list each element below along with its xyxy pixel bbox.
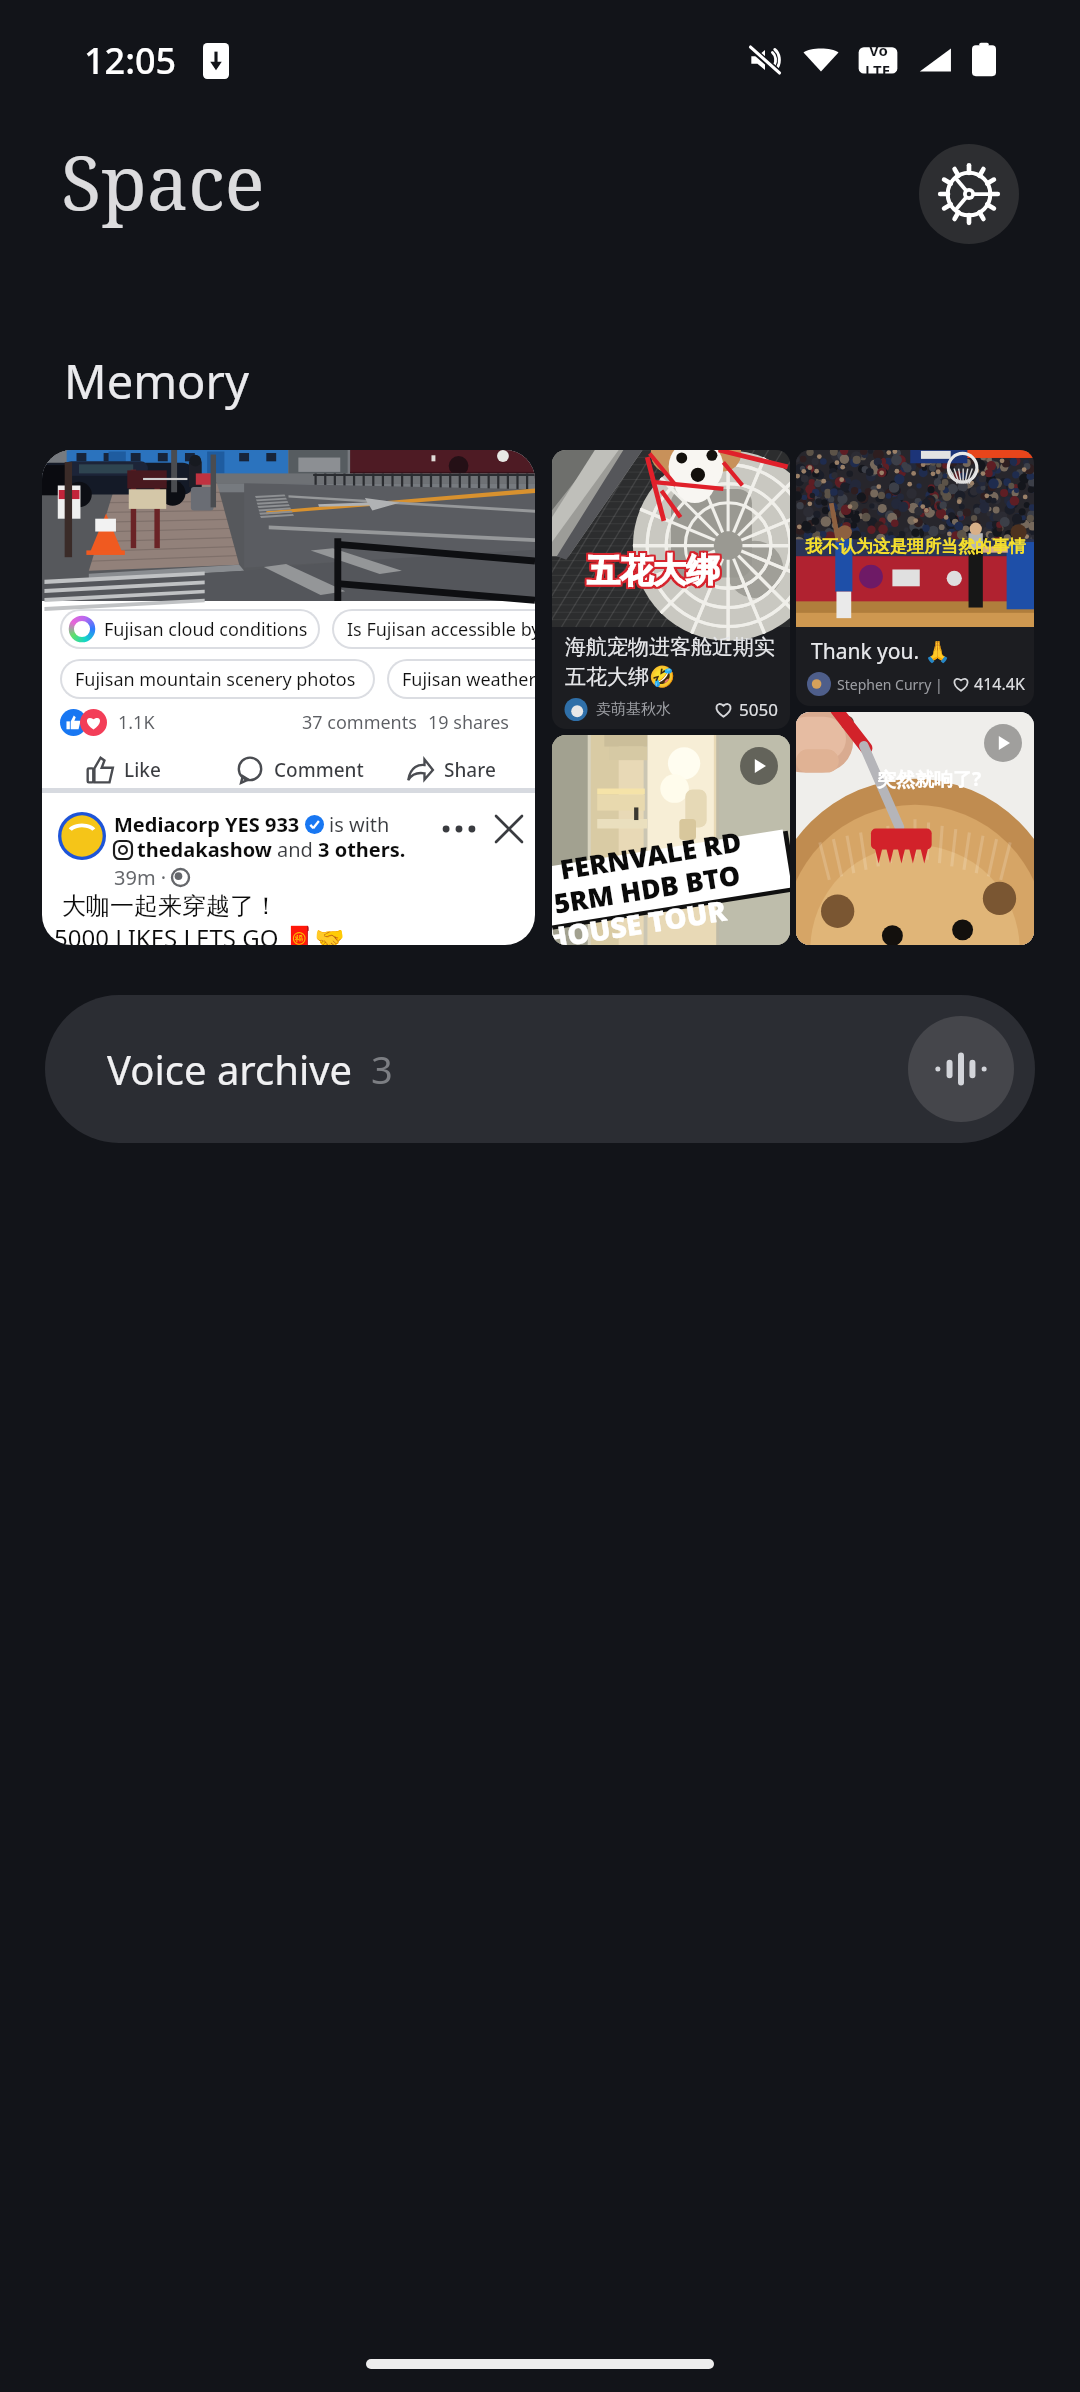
staticText: 五花大绑: [587, 548, 719, 590]
staticText: Comment: [274, 757, 364, 783]
staticText: and: [277, 836, 313, 863]
staticText: 我不认为这是理所当然的事情: [805, 536, 1026, 557]
staticText: 五花大绑: [587, 551, 719, 593]
button[interactable]: 五花大绑: [552, 450, 790, 729]
staticText: 12:05: [84, 36, 177, 85]
staticText: 五花大绑: [585, 549, 717, 591]
staticText: Fujisan cloud conditions: [104, 617, 308, 642]
button[interactable]: Play: [984, 724, 1022, 762]
staticText: 37 comments: [302, 710, 417, 735]
staticText: Mediacorp YES 933: [114, 811, 300, 838]
staticText: 海航宠物进客舱近期实录，: [565, 634, 777, 660]
button[interactable]: Settings: [919, 144, 1019, 244]
staticText: Fujisan weather fo: [402, 667, 535, 692]
button[interactable]: Like: [82, 752, 165, 788]
staticText: 5050: [739, 698, 778, 721]
staticText: 五花大绑: [589, 548, 721, 590]
staticText: 五花大绑: [586, 548, 718, 590]
staticText: 五花大绑: [586, 549, 718, 591]
button[interactable]: Comment: [232, 752, 368, 788]
button[interactable]: Voice archive: [45, 995, 1035, 1143]
staticText: 五花大绑: [589, 551, 721, 593]
button[interactable]: Fujisan weather fo: [389, 661, 535, 697]
staticText: 五花大绑🤣: [565, 664, 676, 690]
staticText: 大咖一起来穿越了！: [62, 891, 278, 921]
staticText: 414.4K: [974, 673, 1025, 695]
staticText: Voice archive: [107, 1042, 353, 1096]
staticText: 5000 LIKES LETS GO 🧧🤝: [54, 921, 345, 945]
staticText: 五花大绑: [585, 550, 717, 592]
staticText: 五花大绑: [587, 552, 719, 594]
staticText: LTE: [865, 60, 891, 80]
staticText: 五花大绑: [588, 549, 720, 591]
staticText: Fujisan mountain scenery photos: [75, 667, 356, 692]
staticText: 3: [371, 1043, 393, 1095]
staticText: Share: [444, 757, 496, 783]
staticText: 卖萌基秋水: [596, 700, 671, 719]
staticText: FERNVALE RD: [557, 822, 745, 888]
button[interactable]: More options: [442, 820, 476, 838]
button[interactable]: Is Fujisan accessible by: [334, 611, 535, 647]
staticText: 五花大绑: [586, 552, 718, 594]
staticText: 五花大绑: [586, 550, 718, 592]
button[interactable]: Voice recorder: [908, 1016, 1014, 1122]
staticText: 五花大绑: [587, 550, 719, 592]
staticText: Is Fujisan accessible by: [347, 617, 535, 642]
button[interactable]: Play: [796, 712, 1034, 945]
staticText: Space: [61, 131, 265, 232]
staticText: Thank you. 🙏: [811, 637, 951, 666]
staticText: 五花大绑: [589, 549, 721, 591]
staticText: 突然就响了?: [877, 766, 982, 792]
staticText: HOUSE TOUR: [552, 891, 730, 945]
staticText: 五花大绑: [588, 552, 720, 594]
staticText: Like: [124, 757, 161, 783]
staticText: 五花大绑: [588, 551, 720, 593]
staticText: is with: [329, 811, 390, 838]
staticText: 3 others.: [318, 836, 406, 863]
staticText: thedakashow: [137, 836, 272, 863]
staticText: 19 shares: [428, 710, 509, 735]
staticText: Vo: [869, 40, 888, 60]
button[interactable]: Share: [402, 752, 500, 788]
button[interactable]: 我不认为这是理所当然的事情: [796, 450, 1034, 706]
staticText: 五花大绑: [589, 552, 721, 594]
button[interactable]: Play: [740, 747, 778, 785]
staticText: Stephen Curry | 史…: [837, 675, 946, 694]
staticText: 1.1K: [118, 710, 155, 735]
button[interactable]: Fujisan mountain scenery photos: [62, 661, 373, 697]
button[interactable]: Close: [496, 816, 522, 842]
staticText: 5RM HDB BTO: [552, 856, 744, 922]
staticText: 五花大绑: [588, 548, 720, 590]
button[interactable]: Play: [552, 735, 790, 945]
staticText: 五花大绑: [587, 549, 719, 591]
staticText: 五花大绑: [589, 550, 721, 592]
button[interactable]: Fujisan cloud conditions: [62, 611, 318, 647]
button[interactable]: Fujisan cloud conditions: [42, 450, 535, 945]
staticText: 五花大绑: [588, 550, 720, 592]
staticText: 五花大绑: [585, 548, 717, 590]
staticText: 五花大绑: [586, 551, 718, 593]
staticText: 五花大绑: [585, 551, 717, 593]
staticText: 39m ·: [114, 864, 167, 891]
staticText: Memory: [64, 349, 249, 413]
staticText: 五花大绑: [585, 552, 717, 594]
